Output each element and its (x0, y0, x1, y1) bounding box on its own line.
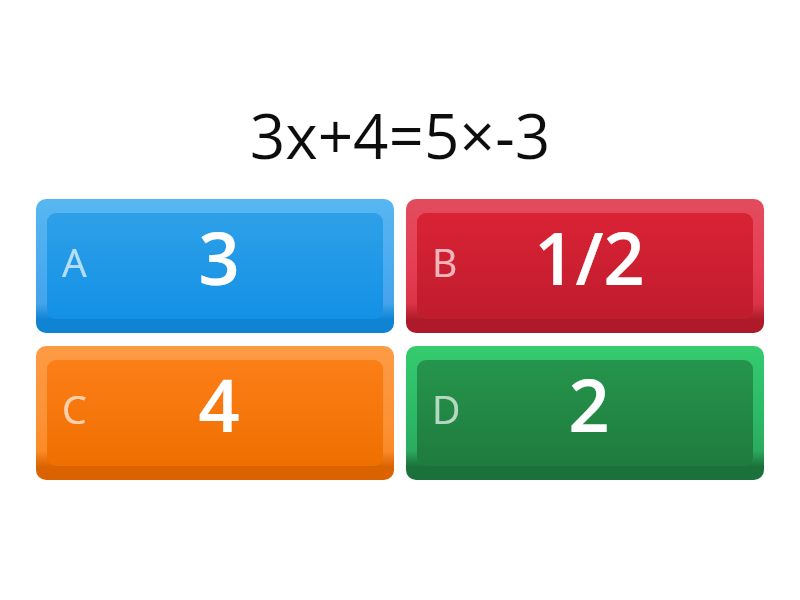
staticText: D (432, 382, 461, 435)
staticText: 2 (568, 355, 610, 453)
button[interactable]: Answer C: 4 (36, 346, 394, 480)
button[interactable]: Answer B: 1/2 (406, 199, 764, 333)
staticText: 3 (198, 208, 240, 306)
staticText: 3x+4=5×-3 (0, 93, 800, 177)
staticText: A (62, 235, 87, 288)
staticText: 1/2 (534, 208, 645, 306)
staticText: 4 (198, 355, 240, 453)
staticText: B (432, 235, 458, 288)
staticText: C (62, 382, 87, 435)
button[interactable]: Answer A: 3 (36, 199, 394, 333)
button[interactable]: Answer D: 2 (406, 346, 764, 480)
